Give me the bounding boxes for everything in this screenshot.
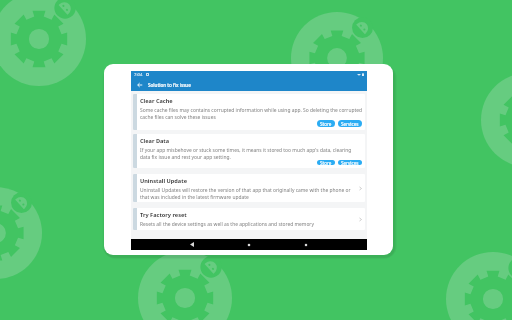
button[interactable]: Clear Data <box>133 134 365 168</box>
button[interactable]: Clear Cache <box>133 94 365 130</box>
button[interactable]: Home <box>239 239 259 250</box>
staticText: Try Factory reset <box>140 211 187 219</box>
staticText: Clear Data <box>140 137 170 145</box>
button[interactable]: Store <box>317 160 335 165</box>
button[interactable]: Store <box>317 120 335 127</box>
button[interactable]: Try Factory reset <box>133 208 365 230</box>
button[interactable]: Back <box>131 78 148 91</box>
staticText: Clear Cache <box>140 97 173 105</box>
button[interactable]: Uninstall Update <box>133 174 365 202</box>
button[interactable]: Services <box>338 120 362 127</box>
staticText: 7:04 <box>134 72 143 78</box>
staticText: Uninstall Update <box>140 177 187 185</box>
staticText: Store <box>320 121 332 127</box>
staticText: Services <box>341 121 359 127</box>
staticText: If your app misbehove or stuck some time… <box>140 147 362 160</box>
staticText: Solution to fix issue <box>148 82 191 88</box>
staticText: Services <box>341 160 359 165</box>
button[interactable]: Recent apps <box>296 239 316 250</box>
staticText: Uninstall Updates will restore the versi… <box>140 187 356 200</box>
staticText: Store <box>320 160 332 165</box>
button[interactable]: Back <box>182 239 202 250</box>
staticText: Resets all the device settings as well a… <box>140 221 314 228</box>
button[interactable]: Services <box>338 160 362 165</box>
staticText: Some cache files may contains corrupted … <box>140 107 362 120</box>
